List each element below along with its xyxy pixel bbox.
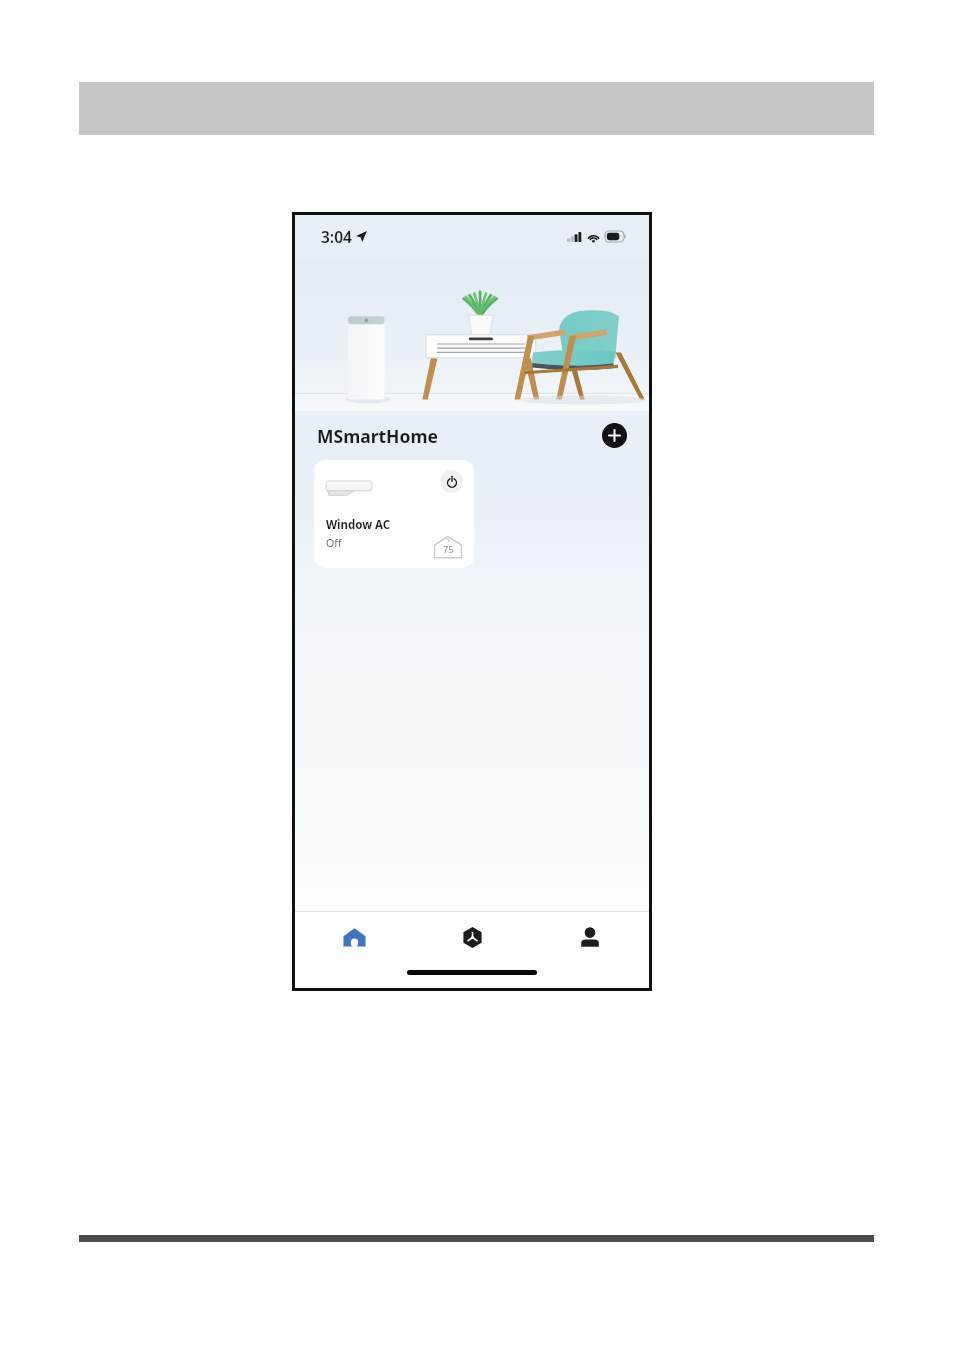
button[interactable]: Power toggle <box>440 470 463 493</box>
button[interactable]: Power toggle <box>314 460 474 568</box>
staticText: MSmartHome <box>317 424 438 448</box>
staticText: Window AC <box>326 517 391 533</box>
button[interactable]: Profile <box>531 912 649 962</box>
button[interactable]: Add device <box>602 423 627 448</box>
staticText: °F <box>446 537 451 543</box>
button[interactable]: Devices <box>413 912 531 962</box>
button[interactable]: Home <box>295 912 413 962</box>
staticText: 3:04 <box>321 226 352 247</box>
staticText: 75 <box>443 543 454 555</box>
staticText: Off <box>326 536 342 550</box>
